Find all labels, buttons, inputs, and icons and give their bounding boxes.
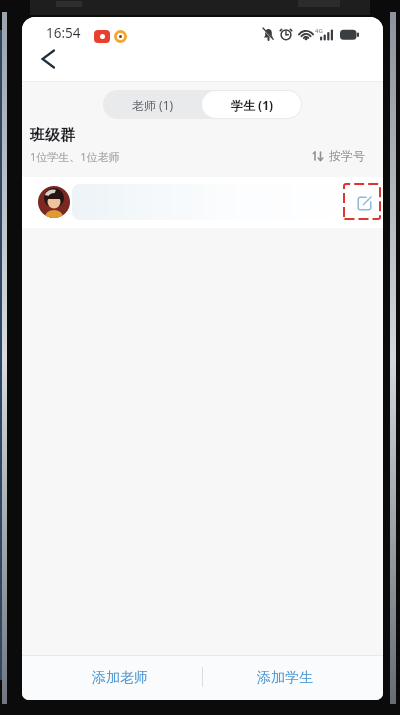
button[interactable] [312, 149, 326, 163]
staticText: 学生 (1) [231, 97, 274, 113]
button[interactable]: 添加老师 [22, 655, 202, 700]
staticText: 老师 (1) [132, 97, 174, 113]
button[interactable]: 学生 (1) [202, 90, 302, 119]
staticText: 班级群 [30, 126, 75, 145]
staticText: 16:54 [46, 24, 81, 42]
button[interactable] [356, 194, 374, 212]
staticText: 添加老师 [92, 669, 148, 687]
staticText: 按学号 [329, 148, 365, 163]
button[interactable] [22, 177, 383, 228]
staticText: 添加学生 [257, 669, 313, 687]
button[interactable]: 老师 (1) [103, 90, 202, 119]
button[interactable]: 添加学生 [202, 655, 383, 700]
button[interactable] [32, 43, 64, 75]
staticText: 4G [315, 27, 323, 35]
staticText: 1位学生、1位老师 [30, 149, 120, 164]
